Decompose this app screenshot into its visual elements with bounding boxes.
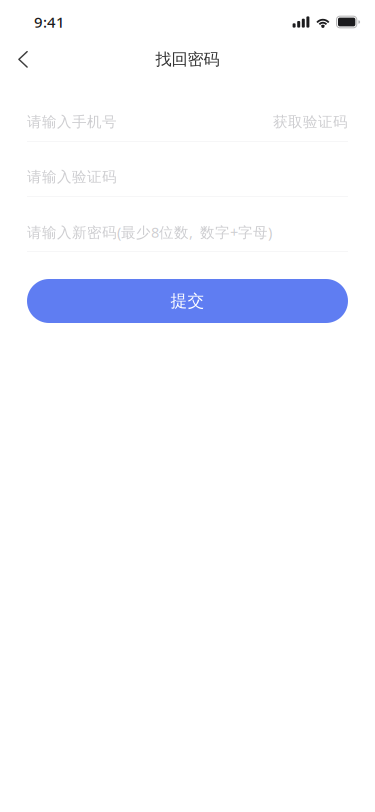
staticText: 请输入新密码(最少8位数, 数字+字母) bbox=[27, 222, 272, 242]
staticText: 获取验证码 bbox=[273, 113, 348, 131]
staticText: 9:41 bbox=[34, 12, 65, 32]
staticText: 请输入手机号 bbox=[27, 113, 117, 131]
button[interactable]: 返回 bbox=[0, 37, 62, 81]
staticText: 找回密码 bbox=[155, 49, 219, 70]
staticText: 提交 bbox=[170, 290, 204, 311]
button[interactable]: 提交 bbox=[27, 279, 348, 323]
button[interactable]: 获取验证码 bbox=[273, 103, 348, 141]
staticText: 请输入验证码 bbox=[27, 168, 117, 186]
